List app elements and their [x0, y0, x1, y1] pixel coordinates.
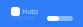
staticText: sync now: [11, 14, 34, 21]
staticText: Hubz: [22, 7, 38, 16]
